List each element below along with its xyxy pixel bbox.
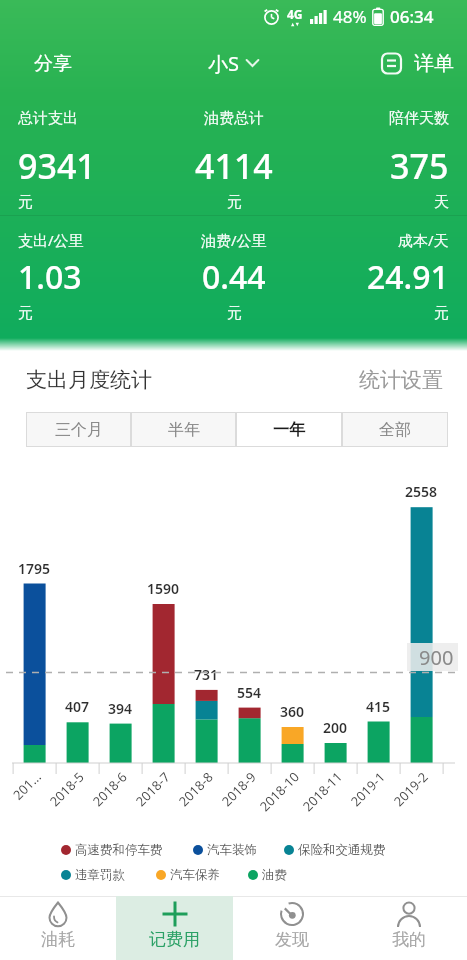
staticText: 油费/公里 [201,230,267,250]
staticText: 支出月度统计 [26,367,152,393]
button[interactable]: 油耗 [0,896,116,960]
staticText: 发现 [275,929,309,950]
button[interactable]: 全部 [342,412,448,447]
staticText: 油费总计 [204,109,264,128]
button[interactable]: 发现 [233,896,350,960]
staticText: 一年 [273,420,305,440]
staticText: 元 [434,304,449,323]
staticText: 油耗 [41,929,75,950]
button[interactable]: 半年 [131,412,236,447]
button[interactable]: 详单 [380,43,467,84]
button[interactable]: 一年 [236,412,342,447]
staticText: 元 [227,193,242,212]
staticText: 总计支出 [18,109,78,128]
button[interactable]: 分享 [0,44,72,84]
staticText: 0.44 [202,255,266,299]
staticText: 元 [227,304,242,323]
staticText: 24.91 [367,255,449,299]
staticText: 分享 [34,52,72,76]
staticText: 三个月 [55,420,103,440]
staticText: 全部 [379,420,411,440]
staticText: 陪伴天数 [389,109,449,128]
staticText: 9341 [18,143,96,189]
staticText: 48% [333,5,367,28]
staticText: 成本/天 [398,230,449,250]
staticText: 4G [287,6,303,22]
staticText: 天 [434,193,449,212]
staticText: 06:34 [390,5,434,28]
staticText: 375 [390,143,449,189]
staticText: 记费用 [149,929,200,950]
button[interactable]: 统计设置 [359,367,443,393]
staticText: 4114 [195,143,273,189]
staticText: 统计设置 [359,367,443,393]
staticText: 我的 [392,929,426,950]
staticText: 元 [18,304,33,323]
staticText: 详单 [414,51,454,76]
staticText: 半年 [168,420,200,440]
button[interactable]: 记费用 [116,896,233,960]
button[interactable]: 小S [202,44,265,83]
staticText: 元 [18,193,33,212]
button[interactable]: 我的 [350,896,467,960]
button[interactable]: 三个月 [26,412,131,447]
staticText: 1.03 [18,255,82,299]
staticText: 支出/公里 [18,230,84,250]
staticText: 小S [208,50,239,77]
